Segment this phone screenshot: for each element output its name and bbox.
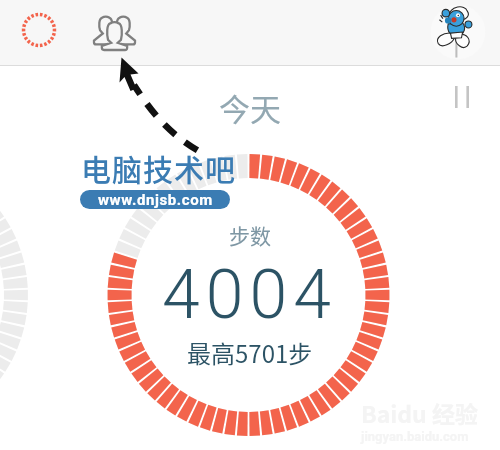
staticText: 最高5701步 [187,335,313,370]
staticText: 步数 [229,220,271,250]
staticText: 电脑技术吧 [81,146,236,189]
button[interactable]: Today activity [17,8,61,52]
staticText: 4004 [162,255,337,335]
staticText: 今天 [219,85,281,130]
staticText: Baidu 经验 [361,396,478,429]
button[interactable]: Friends [90,9,138,57]
staticText: jingyan.baidu.com [361,429,469,444]
staticText: www.dnjsb.com [98,191,213,209]
button[interactable]: Pause [440,75,484,119]
button[interactable]: Profile [429,3,487,61]
